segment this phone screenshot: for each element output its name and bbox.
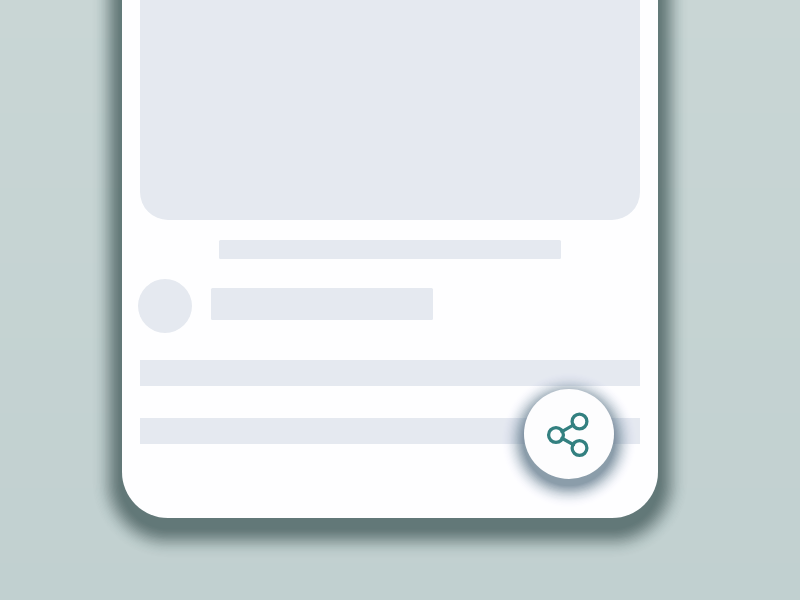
button[interactable]: Author: [122, 270, 658, 342]
button[interactable]: Share: [524, 389, 614, 479]
